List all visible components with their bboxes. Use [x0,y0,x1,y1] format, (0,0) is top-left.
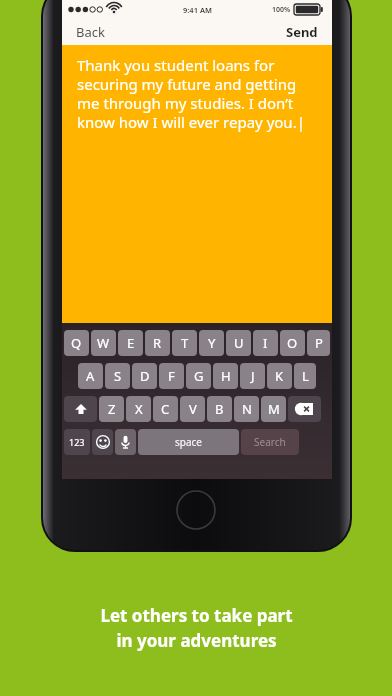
staticText: O [287,334,298,352]
button[interactable]: W [91,330,116,356]
staticText: Search [254,435,286,449]
button[interactable]: Back [74,21,107,43]
staticText: 100% [272,5,291,15]
staticText: C [161,400,170,418]
staticText: Z [108,400,116,418]
staticText: K [275,367,284,385]
button[interactable]: U [226,330,251,356]
staticText: V [189,400,197,418]
staticText: Thank you student loans for securing my … [77,55,320,133]
button[interactable]: B [207,396,232,422]
button[interactable]: Search [241,429,299,455]
button[interactable]: Shift [64,396,97,422]
button[interactable]: Home [176,490,216,530]
button[interactable]: J [240,363,265,389]
button[interactable]: S [105,363,130,389]
button[interactable]: E [118,330,143,356]
button[interactable]: C [153,396,178,422]
button[interactable]: P [307,330,330,356]
button[interactable]: Z [99,396,124,422]
staticText: D [140,367,150,385]
button[interactable]: V [180,396,205,422]
button[interactable]: H [213,363,238,389]
staticText: B [215,400,224,418]
button[interactable]: G [186,363,211,389]
staticText: T [181,334,189,352]
staticText: F [168,367,175,385]
staticText: 123 [69,436,85,448]
staticText: Q [71,334,82,352]
staticText: M [268,400,280,418]
staticText: in your adventures [116,629,277,652]
button[interactable]: space [138,429,239,455]
staticText: G [194,367,204,385]
staticText: X [135,400,143,418]
staticText: Let others to take part [100,604,293,627]
staticText: H [221,367,231,385]
button[interactable]: Dictate [115,429,136,455]
staticText: J [251,367,255,385]
button[interactable]: Y [199,330,224,356]
staticText: S [114,367,122,385]
button[interactable]: R [145,330,170,356]
staticText: I [263,334,268,352]
button[interactable]: 123 [64,429,90,455]
staticText: space [175,435,202,449]
button[interactable]: Q [64,330,89,356]
staticText: L [302,367,309,385]
staticText: E [127,334,135,352]
button[interactable]: Delete [288,396,321,422]
button[interactable]: X [126,396,151,422]
button[interactable]: T [172,330,197,356]
staticText: 9:41 AM [183,5,212,15]
button[interactable]: N [234,396,259,422]
staticText: Send [286,23,318,41]
staticText: P [315,334,323,352]
staticText: A [86,367,95,385]
button[interactable]: K [267,363,292,389]
staticText: U [234,334,244,352]
button[interactable]: A [78,363,103,389]
button[interactable]: Emoji [92,429,113,455]
staticText: R [153,334,162,352]
staticText: Y [208,334,216,352]
button[interactable]: D [132,363,157,389]
button[interactable]: I [253,330,278,356]
button[interactable]: L [294,363,316,389]
button[interactable]: Send [284,21,320,43]
button[interactable]: F [159,363,184,389]
staticText: Back [76,23,105,41]
button[interactable]: O [280,330,305,356]
staticText: W [97,334,110,352]
staticText: N [242,400,252,418]
button[interactable]: M [261,396,286,422]
